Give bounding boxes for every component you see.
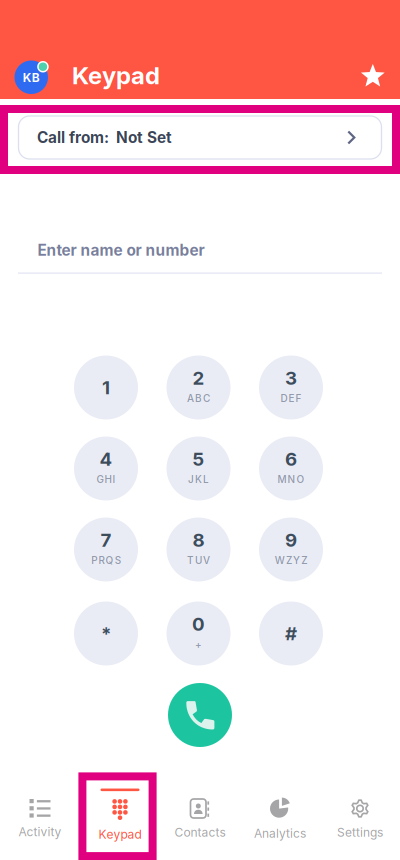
button[interactable]: 4: [74, 436, 138, 500]
button[interactable]: Call: [168, 683, 232, 747]
staticText: 8: [192, 529, 204, 551]
staticText: WZYZ: [275, 554, 307, 566]
staticText: 5: [192, 448, 204, 470]
staticText: 7: [100, 529, 111, 551]
staticText: Call from:: [37, 128, 109, 147]
staticText: MNO: [277, 473, 305, 485]
staticText: JKL: [188, 473, 209, 485]
button[interactable]: 1: [74, 355, 138, 419]
button[interactable]: Settings: [320, 788, 400, 860]
staticText: Keypad: [98, 827, 141, 841]
staticText: KB: [23, 70, 40, 85]
button[interactable]: 7: [74, 517, 138, 581]
staticText: GHI: [96, 473, 116, 485]
button[interactable]: Activity: [0, 788, 80, 860]
staticText: +: [195, 638, 202, 650]
staticText: DEF: [280, 392, 302, 404]
staticText: 3: [285, 367, 297, 389]
staticText: 4: [99, 448, 112, 470]
staticText: Settings: [337, 825, 383, 839]
staticText: 0: [192, 613, 205, 635]
button[interactable]: Call from:: [18, 116, 381, 159]
button[interactable]: 5: [166, 436, 230, 500]
staticText: 6: [285, 448, 297, 470]
button[interactable]: #: [259, 601, 323, 665]
button[interactable]: 6: [259, 436, 323, 500]
button[interactable]: 8: [166, 517, 230, 581]
staticText: Contacts: [174, 825, 225, 839]
button[interactable]: Analytics: [240, 788, 320, 860]
button[interactable]: Profile: [14, 58, 50, 94]
staticText: 2: [192, 367, 204, 389]
button[interactable]: *: [74, 601, 138, 665]
staticText: Activity: [18, 825, 61, 839]
staticText: PRQS: [91, 554, 121, 566]
staticText: 1: [102, 376, 110, 399]
button[interactable]: Favorites: [355, 58, 391, 94]
staticText: Enter name or number: [37, 241, 204, 260]
button[interactable]: Contacts: [160, 788, 240, 860]
button[interactable]: 0: [166, 601, 230, 665]
staticText: Keypad: [72, 61, 160, 90]
button[interactable]: Keypad: [80, 788, 160, 860]
staticText: 9: [285, 529, 297, 551]
button[interactable]: 3: [259, 355, 323, 419]
staticText: Not Set: [116, 128, 172, 147]
button[interactable]: 9: [259, 517, 323, 581]
staticText: *: [101, 622, 111, 645]
staticText: #: [285, 622, 297, 645]
staticText: TUV: [187, 554, 210, 566]
button[interactable]: 2: [166, 355, 230, 419]
staticText: Analytics: [254, 826, 306, 840]
staticText: ABC: [187, 392, 210, 404]
